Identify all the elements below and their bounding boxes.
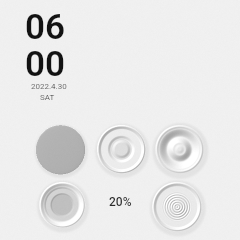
button[interactable]: 06 (25, 7, 65, 48)
button[interactable]: 00 (25, 44, 65, 85)
staticText: 2022.4.30 (31, 82, 67, 91)
staticText: 20% (109, 195, 132, 209)
staticText: SAT (40, 93, 55, 102)
